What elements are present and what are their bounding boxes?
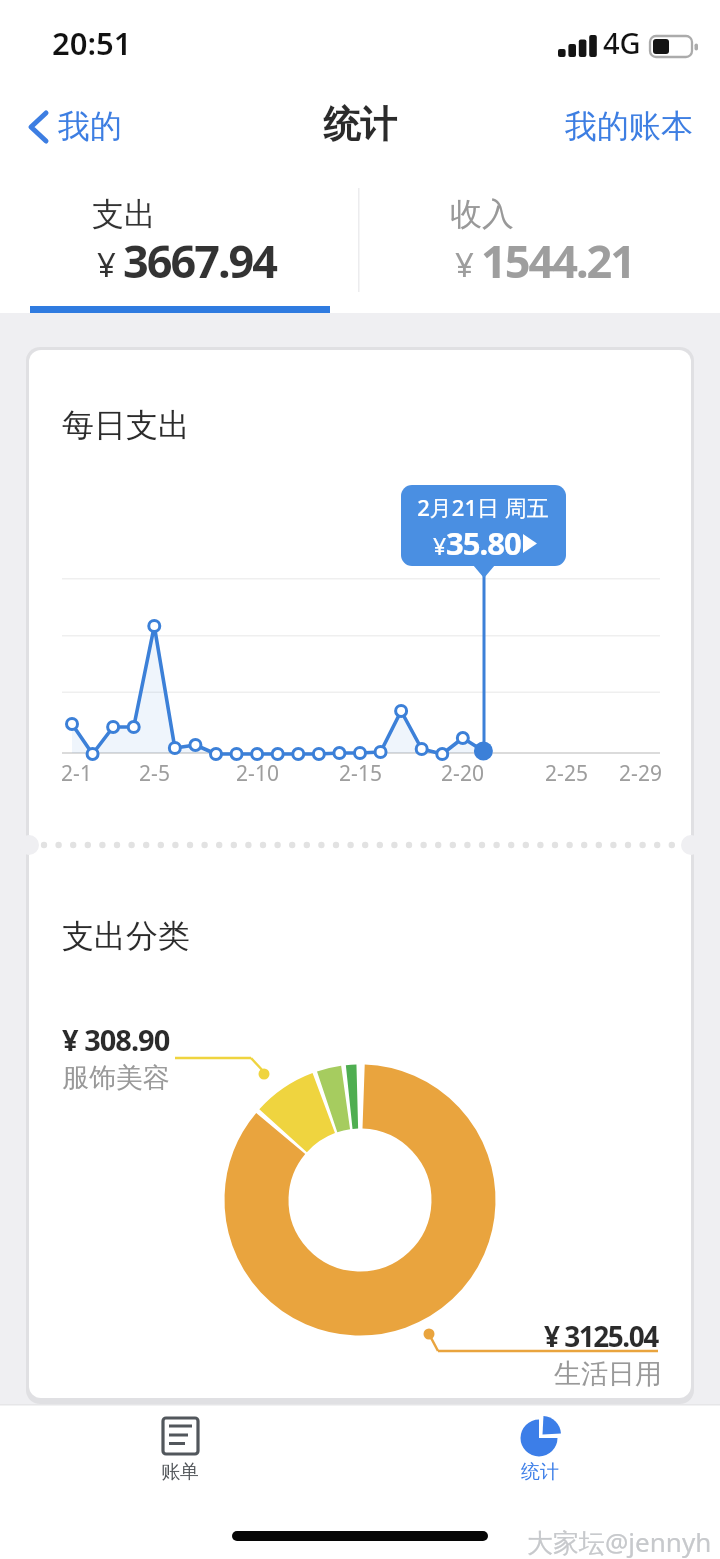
staticText: 大家坛@jennyh xyxy=(527,1524,712,1559)
button[interactable]: 账单 xyxy=(110,1406,250,1492)
staticText: 3667.94 xyxy=(123,230,277,291)
staticText: 生活日用 xyxy=(554,1357,662,1391)
staticText: 20:51 xyxy=(52,22,132,64)
staticText: 每日支出 xyxy=(62,405,190,445)
staticText: 2-29 xyxy=(619,759,662,788)
staticText: ¥ xyxy=(455,242,474,287)
staticText: 2-5 xyxy=(139,759,170,788)
staticText: ¥ 308.90 xyxy=(62,1020,170,1059)
staticText: 2-15 xyxy=(339,759,382,788)
staticText: 统计 xyxy=(323,101,397,148)
staticText: 服饰美容 xyxy=(62,1061,170,1095)
staticText: 收入 xyxy=(450,194,514,234)
staticText: 支出分类 xyxy=(62,916,190,956)
staticText: ¥ xyxy=(433,530,447,561)
button[interactable]: 收入 xyxy=(359,165,720,313)
button[interactable]: 支出 xyxy=(0,165,358,313)
staticText: 2-10 xyxy=(236,759,279,788)
button[interactable]: 我的账本 xyxy=(558,98,700,152)
staticText: ¥ xyxy=(97,242,116,287)
staticText: 支出 xyxy=(92,194,156,234)
staticText: 我的账本 xyxy=(565,106,693,146)
button[interactable]: 我的 xyxy=(24,98,136,152)
staticText: 2-1 xyxy=(61,759,92,788)
staticText: 1544.21 xyxy=(481,230,635,291)
staticText: 2月21日 周五 xyxy=(417,492,549,522)
staticText: 我的 xyxy=(58,106,122,146)
staticText: 统计 xyxy=(521,1460,559,1484)
button[interactable]: 统计 xyxy=(469,1406,609,1492)
staticText: 账单 xyxy=(161,1460,199,1484)
staticText: 4G xyxy=(603,23,641,62)
staticText: 2-25 xyxy=(545,759,588,788)
staticText: ¥ 3125.04 xyxy=(544,1317,658,1355)
staticText: 2-20 xyxy=(441,759,484,788)
staticText: 35.80 xyxy=(446,522,521,564)
